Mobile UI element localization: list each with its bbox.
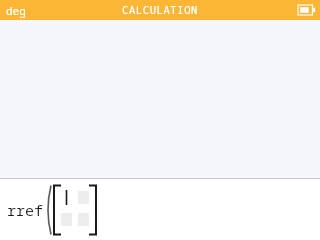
staticText: rref: [7, 200, 44, 220]
other: Battery: [298, 5, 316, 15]
staticText: CALCULATION: [122, 3, 198, 17]
staticText: deg: [6, 3, 26, 18]
button[interactable]: deg: [0, 1, 32, 20]
button[interactable]: rref: [0, 179, 320, 240]
